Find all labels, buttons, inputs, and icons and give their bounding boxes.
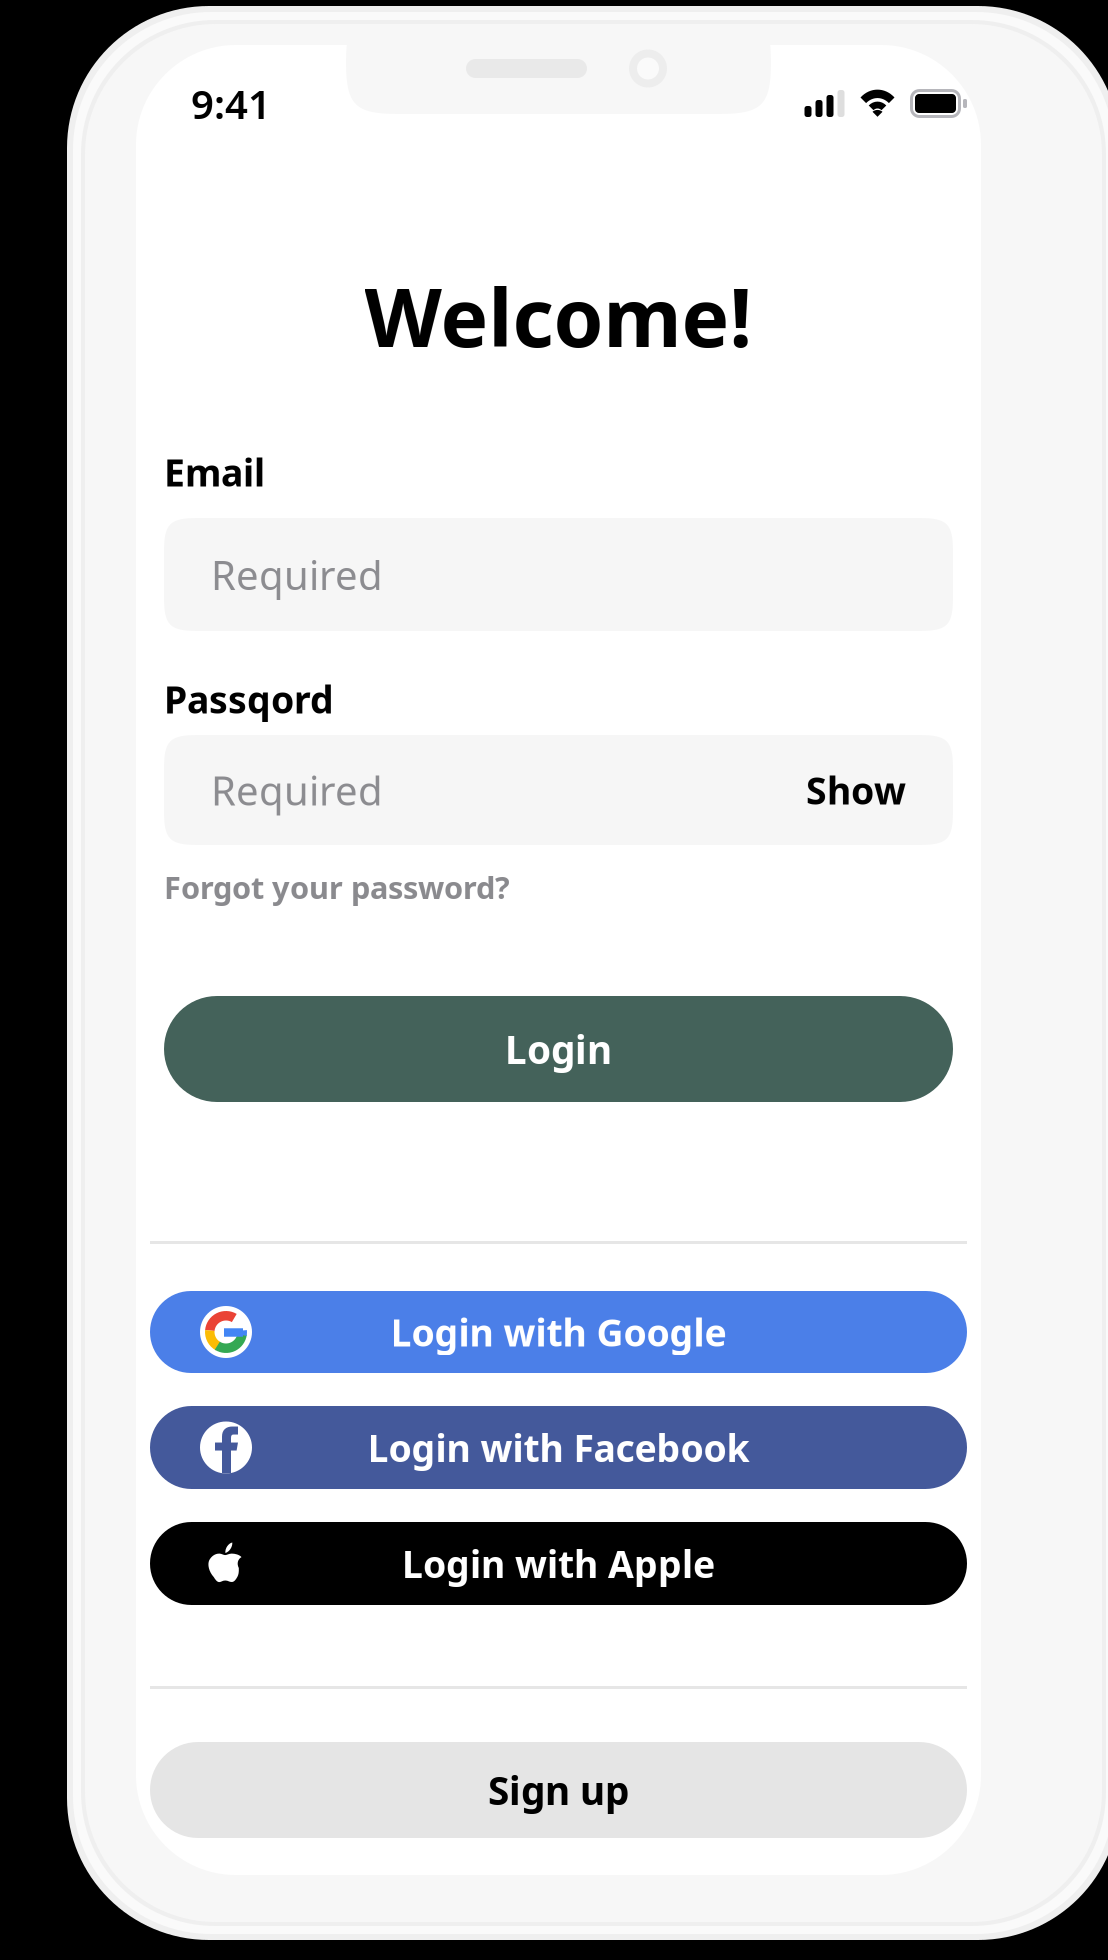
staticText: Show <box>806 765 906 815</box>
staticText: 9:41 <box>191 77 271 130</box>
staticText: Welcome! <box>364 263 752 369</box>
button[interactable]: Forgot your password? <box>164 871 510 903</box>
staticText: Required <box>211 763 383 816</box>
staticText: Login <box>505 1023 612 1075</box>
button[interactable]: Login with Apple <box>150 1522 967 1605</box>
staticText: Passqord <box>164 674 334 724</box>
button[interactable]: Login with Google <box>150 1291 967 1373</box>
button[interactable]: Sign up <box>150 1742 967 1838</box>
staticText: Sign up <box>488 1764 629 1816</box>
staticText: Login with Google <box>390 1307 726 1357</box>
staticText: Login with Facebook <box>367 1423 749 1472</box>
staticText: Required <box>211 548 383 601</box>
button[interactable]: Show <box>806 765 906 815</box>
staticText: Login with Apple <box>402 1539 715 1588</box>
staticText: Forgot your password? <box>164 867 510 907</box>
button[interactable]: Login with Facebook <box>150 1406 967 1489</box>
staticText: Email <box>164 447 265 497</box>
button[interactable]: Login <box>164 996 953 1102</box>
